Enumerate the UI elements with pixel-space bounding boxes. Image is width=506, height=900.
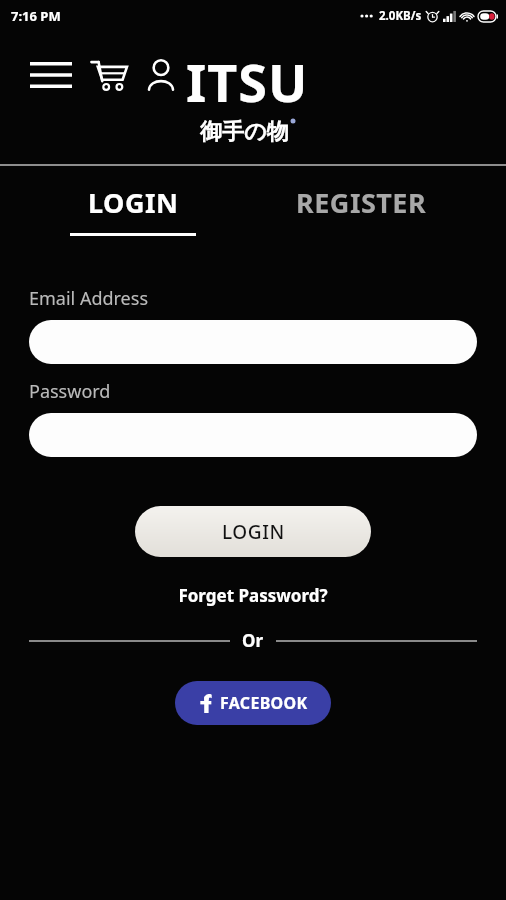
button[interactable]: Cart (88, 54, 130, 96)
staticText: 2.0KB/s (379, 8, 422, 24)
staticText: REGISTER (296, 184, 427, 221)
button[interactable]: FACEBOOK (175, 681, 331, 725)
button[interactable]: REGISTER (296, 184, 427, 221)
button[interactable]: Forget Password? (178, 584, 328, 607)
staticText: Or (242, 629, 264, 652)
button[interactable]: LOGIN (135, 506, 371, 557)
staticText: FACEBOOK (220, 692, 308, 714)
button[interactable]: LOGIN (70, 184, 196, 236)
staticText: ITSU (186, 46, 309, 117)
staticText: Password (29, 379, 111, 404)
staticText: Forget Password? (178, 584, 328, 607)
staticText: LOGIN (88, 184, 179, 221)
button[interactable]: Menu (28, 58, 74, 92)
button[interactable] (29, 413, 477, 457)
staticText: 7:16 PM (11, 7, 61, 25)
staticText: LOGIN (222, 519, 285, 545)
button[interactable]: Account (142, 56, 180, 94)
staticText: 御手の物 (200, 118, 289, 146)
button[interactable] (29, 320, 477, 364)
staticText: Email Address (29, 286, 149, 311)
